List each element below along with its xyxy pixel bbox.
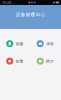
button[interactable]: 消息 xyxy=(30,35,61,52)
button[interactable]: 统计 xyxy=(30,52,61,70)
staticText: 设备管理中心 xyxy=(15,11,45,18)
staticText: 告警 xyxy=(15,58,23,64)
button[interactable]: 告警 xyxy=(0,52,30,70)
staticText: 消息 xyxy=(46,41,54,46)
staticText: 10:24 xyxy=(2,0,11,5)
staticText: 统计 xyxy=(46,58,54,64)
staticText: 设备 xyxy=(15,41,23,46)
button[interactable]: 设备 xyxy=(0,35,30,52)
